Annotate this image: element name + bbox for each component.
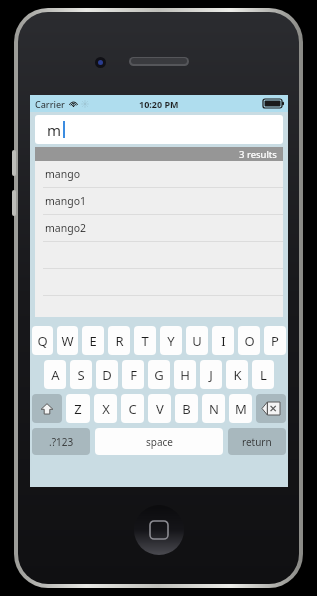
button[interactable]: X [94,394,117,423]
button[interactable]: Q [32,326,53,355]
button[interactable]: J [200,360,222,389]
button[interactable]: Backspace [256,394,286,423]
staticText: K [233,366,242,384]
button[interactable]: Shift [32,394,62,423]
staticText: U [192,332,202,350]
staticText: Y [167,332,175,350]
staticText: R [115,332,124,350]
button[interactable]: F [122,360,144,389]
button[interactable]: .?123 [32,428,90,455]
staticText: F [130,366,137,384]
staticText: C [128,400,137,418]
button[interactable]: space [95,428,223,455]
staticText: H [180,366,190,384]
button[interactable]: W [57,326,78,355]
button[interactable]: V [148,394,171,423]
button[interactable]: return [228,428,286,455]
staticText: D [102,366,112,384]
staticText: Carrier [35,98,65,110]
staticText: V [156,400,164,418]
staticText: mango2 [45,221,87,235]
staticText: M [235,400,247,418]
button[interactable]: E [82,326,104,355]
staticText: 3 results [239,148,277,161]
staticText: A [51,366,60,384]
staticText: J [209,366,213,384]
staticText: P [271,332,279,350]
staticText: E [89,332,97,350]
staticText: L [260,366,267,384]
button[interactable]: mango [35,161,283,188]
button[interactable]: mango2 [35,215,283,242]
button[interactable]: K [226,360,248,389]
button[interactable]: N [202,394,225,423]
button[interactable]: T [134,326,156,355]
button[interactable]: P [264,326,286,355]
staticText: .?123 [49,435,74,449]
button[interactable]: O [238,326,260,355]
staticText: W [61,332,74,350]
staticText: return [242,435,272,449]
button[interactable] [35,242,283,269]
staticText: m [47,120,62,140]
button[interactable]: I [212,326,234,355]
staticText: I [221,332,226,350]
button[interactable]: L [252,360,274,389]
button[interactable]: B [175,394,198,423]
staticText: 10:20 PM [139,98,179,110]
staticText: mango1 [45,194,87,208]
button[interactable]: M [229,394,252,423]
staticText: N [209,400,219,418]
staticText: space [146,435,173,449]
button[interactable] [35,269,283,296]
button[interactable]: Y [160,326,182,355]
button[interactable]: A [44,360,66,389]
staticText: G [154,366,164,384]
button[interactable]: C [121,394,144,423]
button[interactable]: Z [66,394,90,423]
button[interactable]: R [108,326,130,355]
staticText: O [244,332,255,350]
staticText: T [141,332,149,350]
button[interactable]: G [148,360,170,389]
staticText: mango [45,167,81,181]
button[interactable]: U [186,326,208,355]
button[interactable]: H [174,360,196,389]
staticText: Q [37,332,48,350]
button[interactable]: D [96,360,118,389]
staticText: B [182,400,191,418]
staticText: Z [74,400,82,418]
staticText: X [102,400,110,418]
staticText: S [77,366,85,384]
button[interactable]: S [70,360,92,389]
button[interactable]: mango1 [35,188,283,215]
button[interactable]: m [35,115,283,144]
